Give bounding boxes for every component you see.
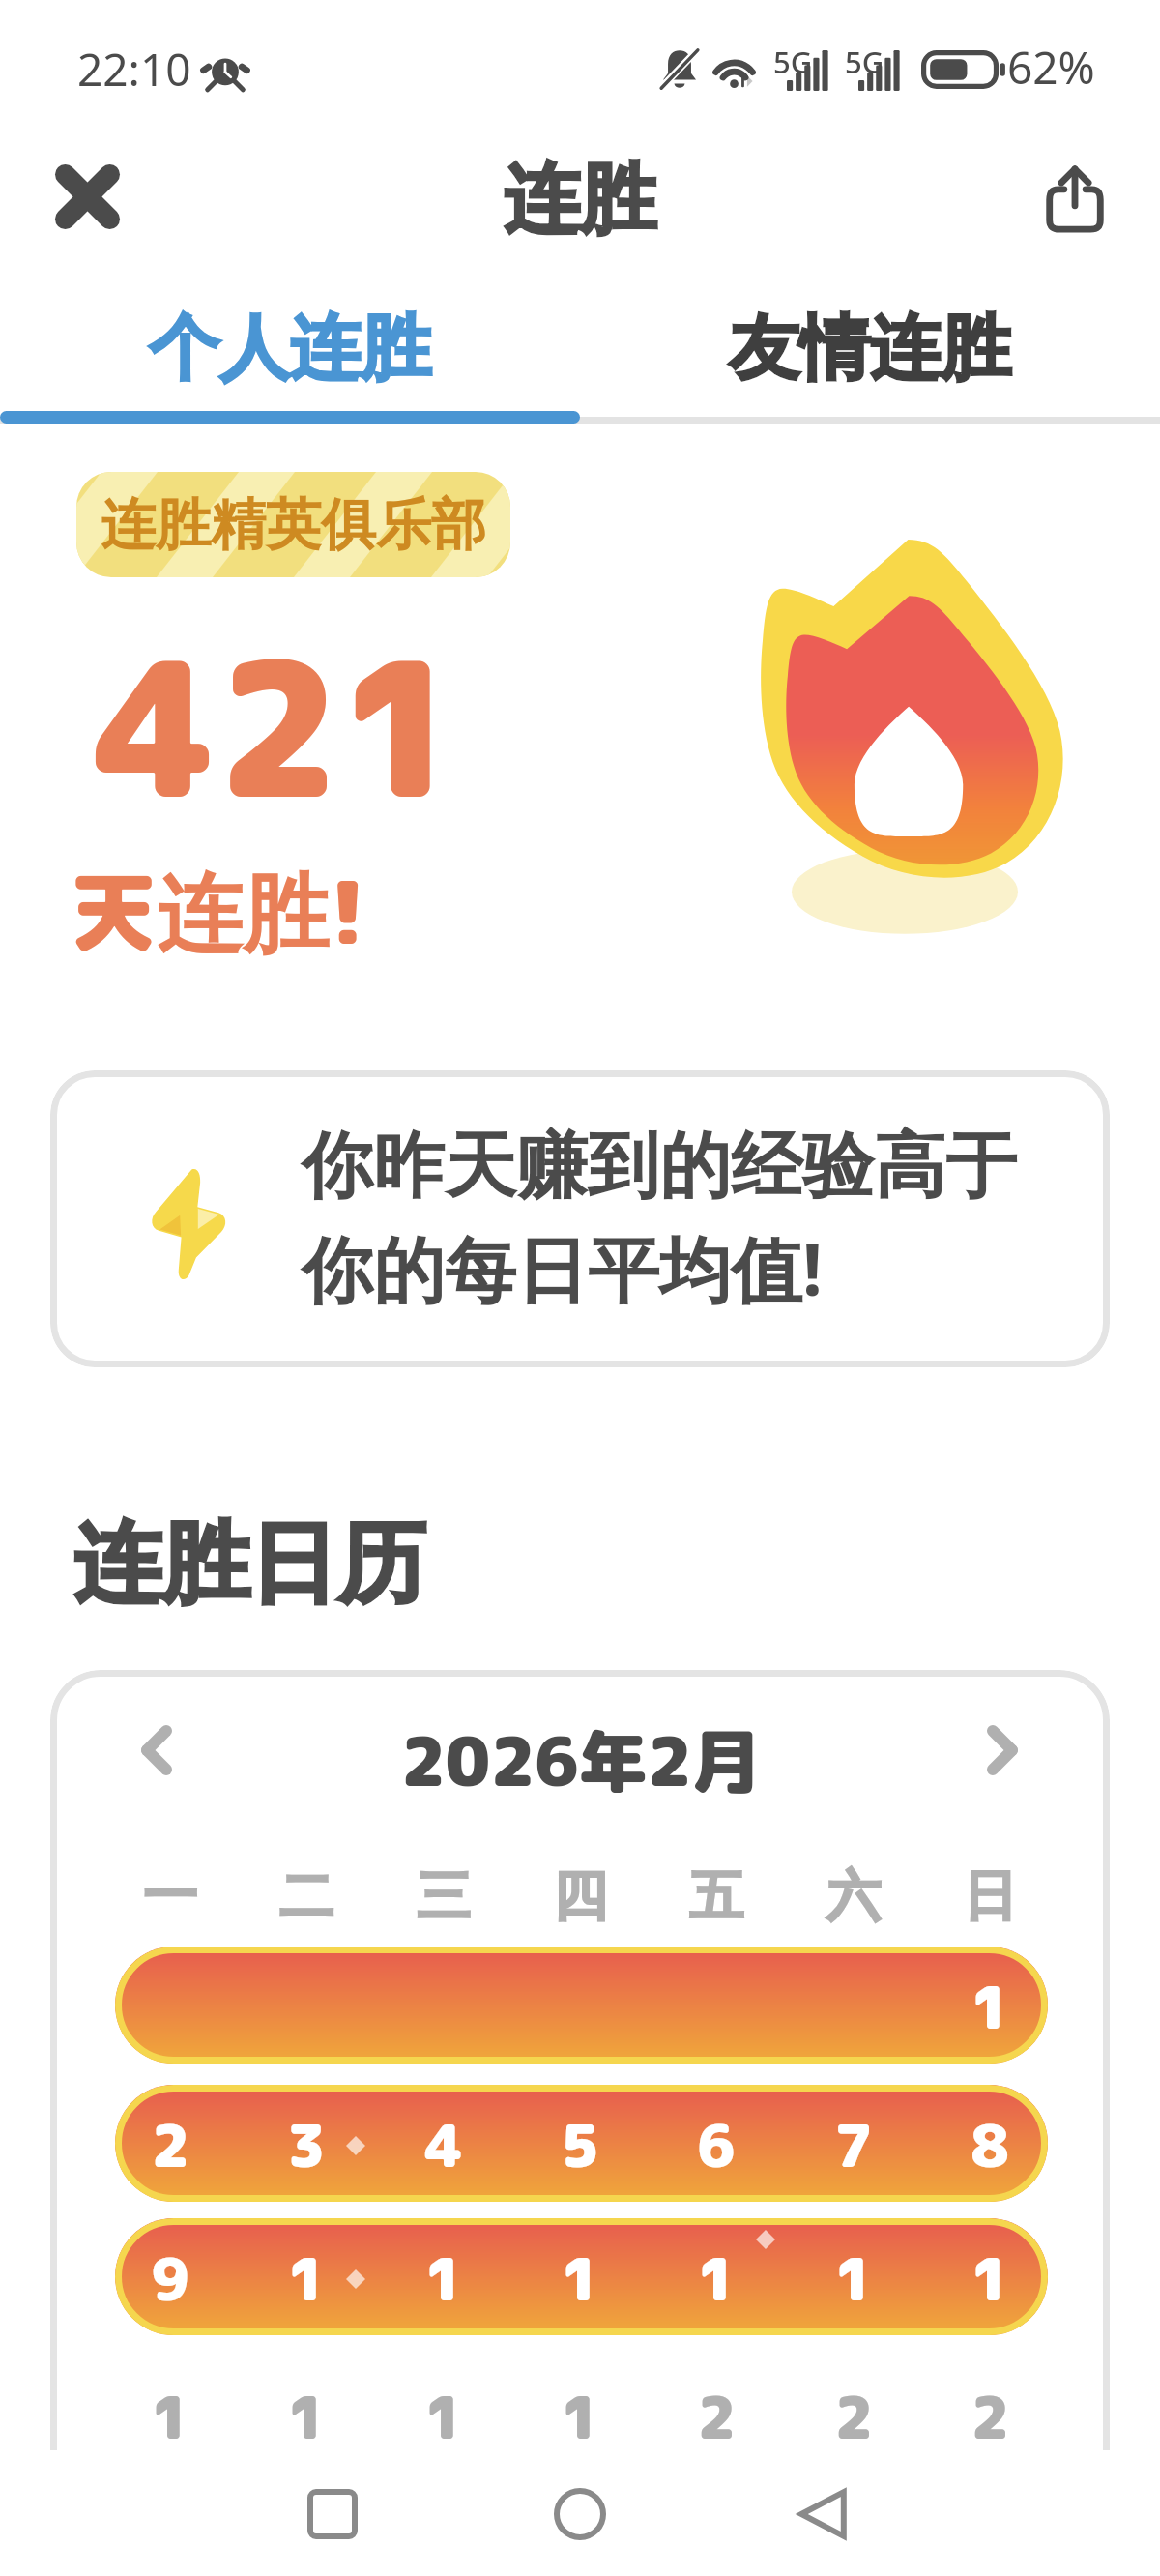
staticText: 22:10 (77, 39, 191, 100)
staticText: 3 (248, 2104, 364, 2185)
staticText: 三 (386, 1862, 502, 1931)
button[interactable]: Next month (944, 1692, 1060, 1808)
staticText: 四 (522, 1862, 638, 1931)
staticText: 62% (1007, 37, 1095, 98)
staticText: 六 (796, 1862, 912, 1931)
staticText: 日 (932, 1862, 1048, 1931)
button[interactable]: Recents (275, 2456, 391, 2572)
staticText: 2 (115, 2104, 228, 2185)
button[interactable]: Home (522, 2456, 638, 2572)
staticText: 你昨天赚到的经验高于你的每日平均值! (302, 1122, 1027, 1317)
staticText: 2 (932, 2376, 1048, 2450)
staticText: 2 (796, 2376, 912, 2450)
button[interactable]: 你昨天赚到的经验高于你的每日平均值! (50, 1070, 1110, 1367)
button[interactable]: 2 (115, 2085, 1048, 2202)
staticText: 1 (386, 2238, 502, 2319)
button[interactable]: 友情连胜 (580, 286, 1160, 411)
staticText: 天连胜! (71, 851, 367, 971)
button[interactable]: Back (766, 2456, 882, 2572)
staticText: 2026年2月 (50, 1713, 1110, 1808)
staticText: 二 (248, 1862, 364, 1931)
button[interactable]: Previous month (99, 1692, 215, 1808)
staticText: 个人连胜 (149, 305, 431, 394)
staticText: 5G (773, 42, 813, 82)
staticText: 5 (522, 2104, 638, 2185)
staticText: 5G (845, 42, 884, 82)
button[interactable]: Close (29, 138, 145, 254)
staticText: 6 (658, 2104, 774, 2185)
staticText: 4 (386, 2104, 502, 2185)
staticText: 连胜 (504, 152, 656, 249)
staticText: 9 (115, 2238, 228, 2319)
staticText: 1 (932, 2238, 1048, 2319)
staticText: 五 (658, 1862, 774, 1931)
button[interactable]: 个人连胜 (0, 286, 580, 411)
button[interactable]: Share (1017, 138, 1133, 254)
staticText: 8 (932, 2104, 1048, 2185)
staticText: 1 (248, 2376, 364, 2450)
staticText: 友情连胜 (729, 305, 1011, 394)
staticText: 连胜精英俱乐部 (101, 490, 486, 560)
staticText: 1 (796, 2238, 912, 2319)
staticText: 421 (94, 598, 462, 857)
staticText: 2 (658, 2376, 774, 2450)
staticText: 1 (386, 2376, 502, 2450)
staticText: 1 (522, 2238, 638, 2319)
staticText: 连胜日历 (73, 1508, 425, 1620)
button[interactable]: 1 (115, 1947, 1048, 2064)
staticText: 1 (248, 2238, 364, 2319)
staticText: 1 (932, 1966, 1048, 2047)
button[interactable]: 9 (115, 2218, 1048, 2335)
staticText: 1 (112, 2376, 228, 2450)
staticText: 7 (796, 2104, 912, 2185)
staticText: 一 (112, 1862, 228, 1931)
staticText: 1 (658, 2238, 774, 2319)
staticText: 1 (522, 2376, 638, 2450)
